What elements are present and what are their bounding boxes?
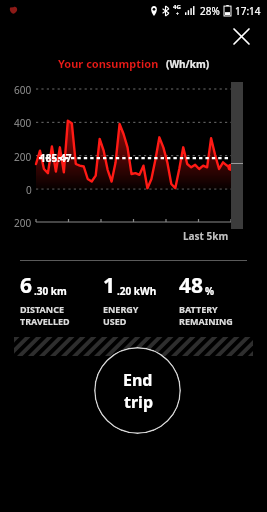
staticText: 200 [14, 150, 32, 164]
staticText: 185.47 [40, 151, 72, 165]
staticText: 200 [14, 216, 32, 230]
staticText: .20 kWh [117, 284, 157, 298]
staticText: DISTANCE [20, 303, 64, 315]
staticText: 600 [14, 83, 32, 97]
staticText: 6 [20, 271, 33, 300]
staticText: 48 [179, 271, 204, 300]
staticText: 400 [14, 116, 32, 130]
staticText: Last 5km [183, 229, 229, 243]
button[interactable]: Close [227, 22, 255, 50]
staticText: 0 [26, 183, 32, 197]
staticText: 28% [200, 4, 220, 18]
staticText: End [123, 369, 153, 391]
staticText: 17:14 [235, 4, 261, 18]
button[interactable]: End [94, 347, 181, 434]
staticText: (Wh/km) [166, 57, 210, 71]
staticText: BATTERY [179, 303, 218, 315]
staticText: USED [103, 315, 127, 327]
staticText: 1 [103, 271, 116, 300]
staticText: .30 km [34, 284, 67, 298]
staticText: + [176, 11, 179, 18]
staticText: TRAVELLED [20, 315, 70, 327]
staticText: ENERGY [103, 303, 139, 315]
staticText: trip [124, 391, 153, 413]
staticText: % [205, 284, 215, 298]
staticText: REMAINING [179, 315, 233, 327]
staticText: Your consumption [58, 56, 159, 71]
staticText: 4G [173, 3, 181, 11]
